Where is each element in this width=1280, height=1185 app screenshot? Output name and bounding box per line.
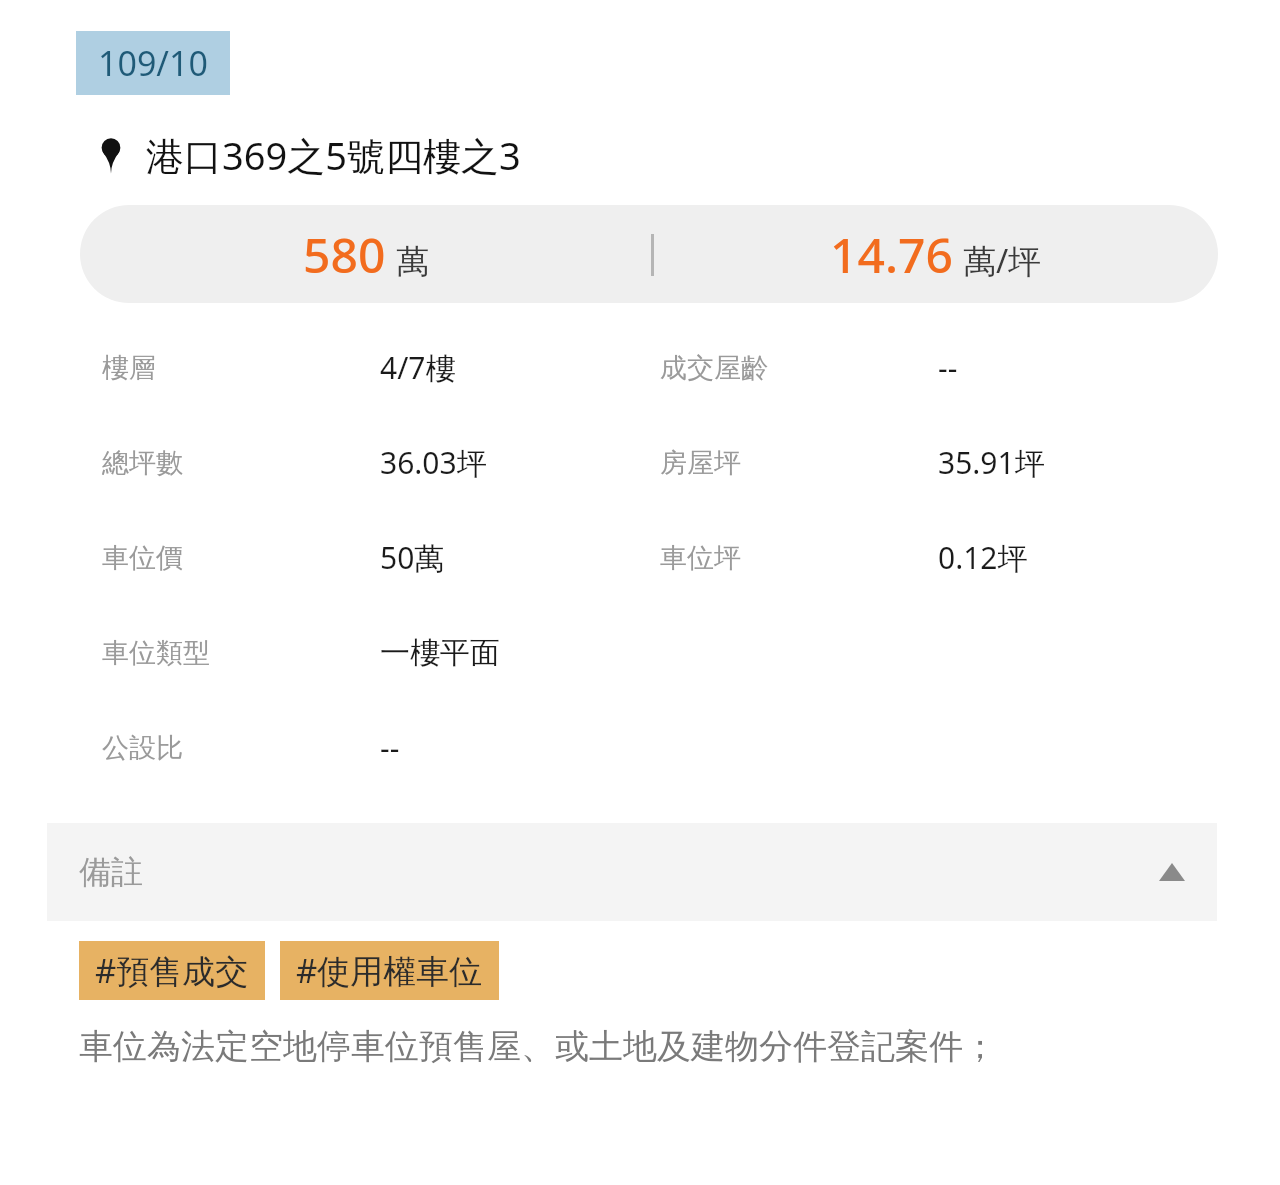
staticText: 580 [303, 222, 386, 287]
staticText: 萬/坪 [963, 238, 1042, 283]
staticText: 總坪數 [102, 446, 183, 480]
staticText: 港口369之5號四樓之3 [146, 129, 521, 181]
staticText: 車位坪 [660, 541, 741, 575]
staticText: 公設比 [102, 731, 183, 765]
staticText: #使用權車位 [296, 948, 483, 993]
staticText: -- [380, 727, 400, 768]
staticText: 車位價 [102, 541, 183, 575]
staticText: 14.76 [830, 222, 953, 287]
button[interactable]: #使用權車位 [280, 941, 499, 1000]
staticText: 0.12坪 [938, 537, 1028, 578]
staticText: 35.91坪 [938, 442, 1045, 483]
button[interactable]: 備註 [47, 823, 1217, 921]
staticText: 成交屋齡 [660, 351, 768, 385]
staticText: 萬 [396, 241, 429, 283]
staticText: 樓層 [102, 351, 156, 385]
staticText: -- [938, 347, 958, 388]
staticText: #預售成交 [95, 948, 249, 993]
staticText: 車位為法定空地停車位預售屋、或土地及建物分件登記案件； [79, 1025, 997, 1068]
staticText: 109/10 [98, 40, 208, 86]
other: Location [98, 136, 124, 174]
staticText: 4/7樓 [380, 347, 456, 388]
staticText: 36.03坪 [380, 442, 487, 483]
button[interactable]: 580 [80, 205, 1218, 303]
other: Collapse notes [1159, 863, 1185, 881]
staticText: 備註 [79, 852, 143, 892]
staticText: 車位類型 [102, 636, 210, 670]
button[interactable]: 109/10 [76, 31, 230, 95]
staticText: 房屋坪 [660, 446, 741, 480]
button[interactable]: Location [0, 129, 1280, 181]
button[interactable]: #預售成交 [79, 941, 265, 1000]
staticText: 50萬 [380, 537, 445, 578]
staticText: 一樓平面 [380, 634, 500, 672]
